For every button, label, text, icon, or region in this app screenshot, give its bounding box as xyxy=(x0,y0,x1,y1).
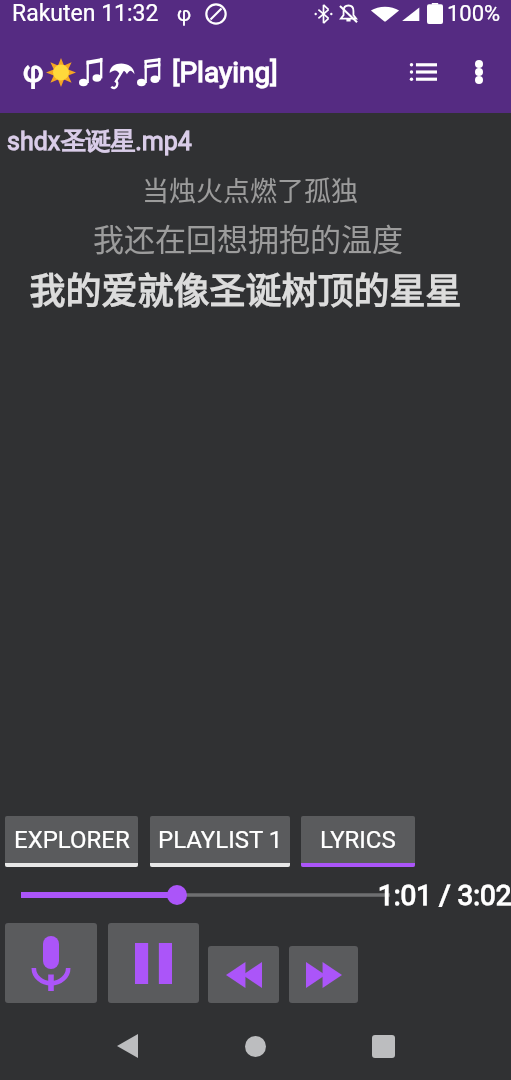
button[interactable]: Playlist xyxy=(391,46,455,98)
button[interactable]: PLAYLIST 1 xyxy=(150,816,290,867)
button[interactable]: Rewind xyxy=(208,946,279,1003)
staticText: 当烛火点燃了孤独 xyxy=(0,170,500,209)
button[interactable]: Fast forward xyxy=(289,946,358,1003)
staticText: 100% xyxy=(447,1,501,27)
button[interactable]: Home xyxy=(231,1022,279,1070)
staticText: Rakuten 11:32 xyxy=(12,0,159,27)
staticText: 1:01 / 3:02 xyxy=(378,879,511,912)
staticText: [Playing] xyxy=(172,56,278,89)
staticText: EXPLORER xyxy=(14,826,130,854)
staticText: 我的爱就像圣诞树顶的星星 xyxy=(0,262,491,314)
staticText: 我还在回想拥抱的温度 xyxy=(0,215,496,260)
staticText: φ xyxy=(177,2,192,25)
button[interactable]: Recents xyxy=(359,1022,407,1070)
staticText: LYRICS xyxy=(320,826,396,854)
button[interactable]: LYRICS xyxy=(301,816,415,867)
button[interactable]: Back xyxy=(103,1022,151,1070)
button[interactable]: More options xyxy=(455,48,503,96)
staticText: PLAYLIST 1 xyxy=(158,826,283,854)
staticText: φ xyxy=(23,55,44,89)
button[interactable]: EXPLORER xyxy=(5,816,138,867)
button[interactable]: Voice search xyxy=(5,923,97,1003)
button[interactable]: Pause xyxy=(108,923,199,1003)
staticText: shdx圣诞星.mp4 xyxy=(7,126,192,157)
